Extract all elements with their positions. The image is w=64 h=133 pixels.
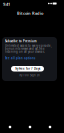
button[interactable]: Library xyxy=(40,123,60,131)
staticText: Unlimited access to every episode, xyxy=(5,44,52,47)
staticText: listening on all your devices. xyxy=(5,50,45,53)
button[interactable]: Search xyxy=(20,123,40,131)
staticText: bonus interviews and ad-free xyxy=(5,47,45,50)
staticText: Subscribe to Premium xyxy=(5,39,37,43)
staticText: See all plan options xyxy=(5,56,35,60)
button[interactable]: Try Free for 7 Days xyxy=(11,66,44,71)
button[interactable]: See all plan options xyxy=(5,56,35,60)
staticText: Bitcoin Radio xyxy=(17,10,43,16)
staticText: Try Free for 7 Days xyxy=(15,67,40,70)
button[interactable]: Listen xyxy=(0,123,20,131)
staticText: 9:41 xyxy=(3,1,10,7)
button[interactable]: Try 100 Sign In xyxy=(19,73,40,77)
staticText: Try 100 Sign In xyxy=(19,73,40,77)
